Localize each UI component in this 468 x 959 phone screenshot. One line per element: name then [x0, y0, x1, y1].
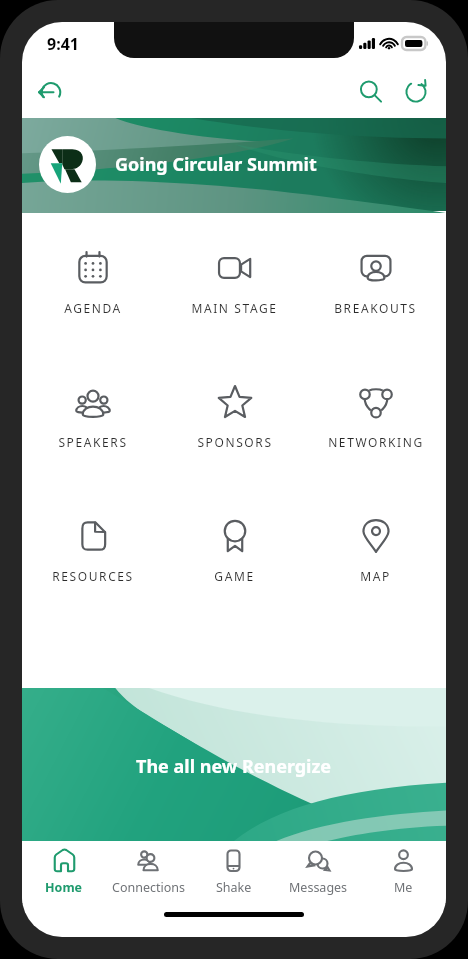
button[interactable]: GAME — [164, 479, 305, 600]
button[interactable]: SPEAKERS — [22, 345, 164, 466]
staticText: BREAKOUTS — [334, 300, 417, 316]
staticText: GAME — [214, 568, 255, 584]
staticText: SPEAKERS — [58, 434, 128, 450]
button[interactable]: NETWORKING — [305, 345, 446, 466]
button[interactable]: RESOURCES — [22, 479, 164, 600]
staticText: SPONSORS — [197, 434, 273, 450]
staticText: Shake — [216, 879, 252, 896]
button[interactable]: AGENDA — [22, 211, 164, 332]
button[interactable]: Connections — [106, 848, 191, 896]
staticText: MAIN STAGE — [191, 300, 278, 316]
staticText: MAP — [360, 568, 391, 584]
button[interactable]: Messages — [276, 848, 361, 896]
staticText: RESOURCES — [52, 568, 134, 584]
staticText: NETWORKING — [328, 434, 424, 450]
button[interactable]: Search — [350, 71, 392, 113]
button[interactable]: Going Circular Summit — [22, 118, 446, 211]
staticText: 9:41 — [47, 33, 79, 55]
button[interactable]: MAP — [305, 479, 446, 600]
button[interactable]: The all new Renergize — [22, 688, 446, 841]
staticText: AGENDA — [64, 300, 122, 316]
button[interactable]: Shake — [191, 848, 276, 896]
button[interactable]: Me — [361, 848, 446, 896]
button[interactable]: Home — [22, 848, 106, 896]
staticText: Home — [45, 879, 83, 896]
staticText: The all new Renergize — [136, 754, 332, 779]
staticText: Going Circular Summit — [115, 152, 317, 177]
button[interactable]: MAIN STAGE — [164, 211, 305, 332]
staticText: Messages — [289, 879, 348, 896]
button[interactable]: SPONSORS — [164, 345, 305, 466]
staticText: Me — [394, 879, 413, 896]
button[interactable]: Refresh — [395, 71, 437, 113]
staticText: Connections — [112, 879, 185, 896]
button[interactable]: Exit — [29, 71, 71, 113]
button[interactable]: BREAKOUTS — [305, 211, 446, 332]
